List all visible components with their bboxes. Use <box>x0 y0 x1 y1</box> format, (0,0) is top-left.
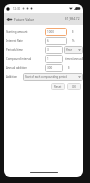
staticText: 300 <box>47 66 53 70</box>
button[interactable]: 300 <box>45 64 63 72</box>
staticText: times/annually <box>65 57 83 61</box>
staticText: 1 <box>47 57 49 61</box>
staticText: Compound interval <box>6 57 45 61</box>
staticText: Annual addition <box>6 66 45 70</box>
staticText: $ <box>68 66 70 70</box>
button[interactable]: OK <box>67 83 81 90</box>
button[interactable]: 1 <box>45 55 63 63</box>
staticText: 6 <box>47 39 49 43</box>
staticText: Periods/time <box>6 48 45 52</box>
staticText: Starting amount <box>6 30 45 34</box>
button[interactable]: 3 <box>45 46 63 54</box>
button[interactable]: Reset <box>51 83 65 90</box>
staticText: OK <box>72 85 76 89</box>
staticText: Reset <box>54 85 62 89</box>
button[interactable]: Start of each compounding period <box>25 73 81 81</box>
staticText: Start of each compounding period <box>25 75 78 79</box>
staticText: $ <box>72 30 74 34</box>
staticText: % <box>72 39 75 43</box>
staticText: 12:30 <box>13 7 21 11</box>
button[interactable]: Year <box>66 46 81 54</box>
button[interactable]: 1000 <box>45 28 67 36</box>
button[interactable]: Back <box>6 16 13 23</box>
staticText: Interest Rate <box>6 39 45 43</box>
staticText: $1,984.72 <box>65 17 80 21</box>
button[interactable]: 6 <box>45 37 67 45</box>
staticText: Addition <box>6 75 23 79</box>
staticText: Future Value <box>14 17 35 22</box>
staticText: 1000 <box>47 30 54 34</box>
staticText: Year <box>66 48 78 52</box>
staticText: 3 <box>47 48 49 52</box>
